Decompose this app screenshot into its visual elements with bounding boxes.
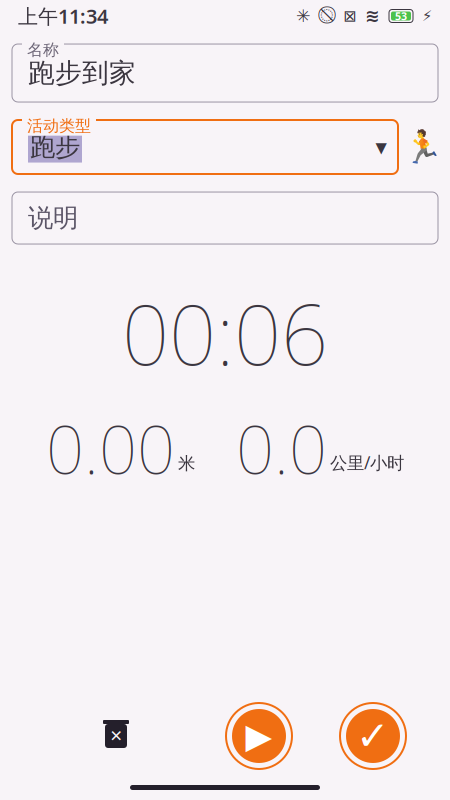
staticText: 00:06 bbox=[122, 278, 328, 388]
staticText: 0.0 bbox=[236, 404, 327, 492]
button[interactable]: 活动图标 bbox=[408, 120, 438, 174]
staticText: 说明 bbox=[28, 202, 78, 233]
staticText: 53 bbox=[395, 9, 407, 23]
staticText: 跑步到家 bbox=[28, 57, 136, 89]
staticText: ⚡︎ bbox=[422, 8, 432, 24]
staticText: 🏃 bbox=[403, 129, 443, 165]
staticText: 上午11:34 bbox=[18, 3, 108, 29]
staticText: 名称 bbox=[27, 40, 59, 60]
staticText: 0.00 bbox=[46, 404, 175, 492]
staticText: ✳ bbox=[296, 6, 311, 26]
staticText: ≋ bbox=[365, 6, 380, 26]
staticText: 公里/小时 bbox=[330, 451, 404, 474]
staticText: ✕ bbox=[109, 727, 122, 745]
staticText: 活动类型 bbox=[27, 116, 91, 136]
button[interactable]: 完成 bbox=[338, 701, 408, 771]
button[interactable]: 开始 bbox=[224, 701, 294, 771]
staticText: ▶ bbox=[245, 716, 272, 756]
staticText: ⃠ bbox=[320, 7, 334, 24]
staticText: ✓ bbox=[356, 713, 390, 759]
staticText: 米 bbox=[178, 453, 195, 474]
staticText: 跑步 bbox=[30, 131, 80, 162]
staticText: ▾ bbox=[375, 134, 386, 160]
staticText: ⊠ bbox=[343, 7, 356, 25]
button[interactable]: 删除 bbox=[88, 701, 144, 771]
button[interactable]: 选择活动类型 bbox=[364, 120, 398, 174]
